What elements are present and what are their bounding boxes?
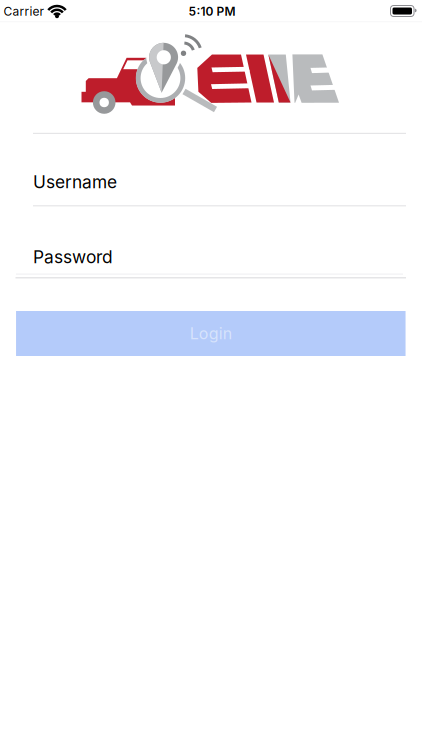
staticText: Username <box>33 172 117 192</box>
staticText: Carrier <box>3 4 44 19</box>
staticText: Login <box>190 324 232 343</box>
staticText: 5:10 PM <box>188 4 235 19</box>
staticText: Password <box>33 247 113 267</box>
